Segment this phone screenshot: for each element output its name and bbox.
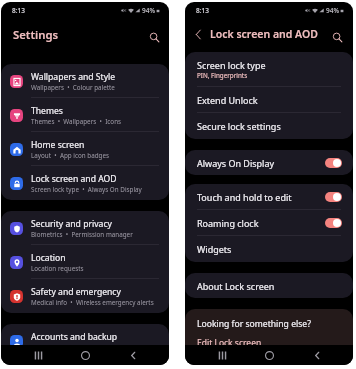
staticText: Settings <box>13 27 59 42</box>
button[interactable]: Screen lock type <box>185 52 353 87</box>
staticText: Biometrics • Permission manager <box>31 230 133 239</box>
staticText: Screen lock type • Always On Display <box>31 185 142 194</box>
button[interactable]: Roaming clock <box>185 210 353 236</box>
staticText: Extend Unlock <box>197 94 258 106</box>
button[interactable]: Recent apps <box>27 345 49 365</box>
button[interactable]: Widgets <box>185 236 353 262</box>
button[interactable]: Home <box>74 345 96 365</box>
staticText: Lock screen and AOD <box>31 173 117 185</box>
staticText: Always On Display <box>197 157 275 169</box>
button[interactable]: Always On Display <box>185 150 353 175</box>
staticText: Secure lock settings <box>197 120 281 132</box>
button[interactable]: About Lock screen <box>185 273 353 298</box>
button[interactable]: Accounts and backup <box>1 324 169 358</box>
button[interactable]: Back <box>122 345 144 365</box>
staticText: About Lock screen <box>197 280 275 292</box>
button[interactable]: Safety and emergency <box>1 279 169 313</box>
staticText: Safety and emergency <box>31 286 121 298</box>
button[interactable]: Wallpapers and Style <box>1 64 169 98</box>
staticText: Themes <box>31 105 63 117</box>
staticText: Manage accounts • Smart Switch <box>31 343 131 352</box>
button[interactable]: Secure lock settings <box>185 113 353 139</box>
button[interactable]: Lock screen and AOD <box>1 166 169 200</box>
staticText: 94% <box>142 6 155 15</box>
button[interactable]: Home screen <box>1 132 169 166</box>
staticText: Roaming clock <box>197 217 259 229</box>
button[interactable]: Location <box>1 245 169 279</box>
staticText: 8:13 <box>196 6 209 15</box>
staticText: Looking for something else? <box>197 318 311 330</box>
staticText: PIN, Fingerprints <box>197 71 248 80</box>
staticText: Screen lock type <box>197 59 266 71</box>
staticText: Wallpapers • Colour palette <box>31 83 115 92</box>
staticText: Location requests <box>31 264 84 273</box>
staticText: Medical info • Wireless emergency alerts <box>31 298 154 307</box>
staticText: 94% <box>326 6 339 15</box>
staticText: Widgets <box>197 243 232 255</box>
button[interactable]: Recent apps <box>211 345 233 365</box>
button[interactable]: Extend Unlock <box>185 87 353 113</box>
staticText: Themes • Wallpapers • Icons <box>31 117 122 126</box>
staticText: Location <box>31 252 66 264</box>
staticText: Home screen <box>31 139 85 151</box>
staticText: 8:13 <box>12 6 25 15</box>
staticText: Wallpapers and Style <box>31 71 116 83</box>
button[interactable]: Themes <box>1 98 169 132</box>
staticText: Touch and hold to edit <box>197 191 292 203</box>
staticText: Security and privacy <box>31 218 112 230</box>
button[interactable]: Home <box>258 345 280 365</box>
button[interactable]: Touch and hold to edit <box>185 184 353 210</box>
button[interactable]: Search <box>330 30 344 44</box>
staticText: Layout • App icon badges <box>31 151 110 160</box>
button[interactable]: Search <box>147 30 162 45</box>
button[interactable]: Security and privacy <box>1 211 169 245</box>
staticText: Accounts and backup <box>31 331 118 343</box>
button[interactable]: Back <box>306 345 328 365</box>
staticText: Lock screen and AOD <box>210 27 318 41</box>
staticText: Edit Lock screen <box>197 337 262 349</box>
button[interactable]: Back <box>191 27 206 42</box>
